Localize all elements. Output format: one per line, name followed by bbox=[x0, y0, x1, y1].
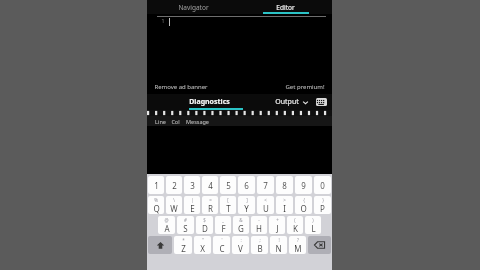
staticText: G bbox=[238, 223, 244, 234]
staticText: B bbox=[257, 243, 263, 254]
staticText: : bbox=[240, 237, 242, 243]
staticText: V bbox=[238, 243, 243, 254]
button[interactable]: _ bbox=[215, 216, 231, 234]
button[interactable]: Navigator bbox=[147, 0, 239, 14]
staticText: 9 bbox=[301, 180, 306, 191]
staticText: _ bbox=[222, 217, 224, 223]
staticText: = bbox=[209, 197, 212, 203]
button[interactable]: 5 bbox=[220, 176, 236, 194]
button[interactable]: * bbox=[174, 236, 192, 254]
button[interactable]: ' bbox=[213, 236, 230, 254]
button[interactable]: 0 bbox=[314, 176, 331, 194]
button[interactable]: Editor bbox=[239, 0, 332, 14]
staticText: 1 bbox=[154, 180, 159, 191]
staticText: S bbox=[183, 223, 188, 234]
button[interactable]: ! bbox=[270, 236, 287, 254]
button[interactable]: = bbox=[202, 196, 218, 214]
staticText: Remove ad banner bbox=[154, 83, 208, 91]
staticText: % bbox=[154, 197, 158, 203]
staticText: Message bbox=[186, 118, 209, 125]
button[interactable]: Keyboard bbox=[316, 98, 327, 106]
button[interactable]: Get premium! bbox=[284, 82, 326, 92]
staticText: * bbox=[182, 237, 185, 243]
button[interactable]: @ bbox=[158, 216, 175, 234]
button[interactable]: | bbox=[184, 196, 200, 214]
staticText: 3 bbox=[190, 180, 195, 191]
button[interactable]: < bbox=[257, 196, 274, 214]
staticText: O bbox=[300, 203, 307, 214]
button[interactable]: 1 bbox=[148, 176, 164, 194]
button[interactable]: { bbox=[295, 196, 312, 214]
staticText: D bbox=[202, 223, 208, 234]
staticText: U bbox=[263, 203, 269, 214]
button[interactable]: } bbox=[314, 196, 331, 214]
button[interactable]: [ bbox=[220, 196, 236, 214]
button[interactable]: 9 bbox=[295, 176, 312, 194]
staticText: | bbox=[191, 197, 194, 203]
staticText: 5 bbox=[226, 180, 231, 191]
button[interactable]: ] bbox=[238, 196, 255, 214]
staticText: 6 bbox=[244, 180, 249, 191]
staticText: L bbox=[311, 223, 316, 234]
button[interactable]: Diagnostics bbox=[147, 94, 272, 110]
button[interactable]: ? bbox=[289, 236, 306, 254]
button[interactable]: 6 bbox=[238, 176, 255, 194]
staticText: W bbox=[170, 203, 178, 214]
staticText: Z bbox=[181, 243, 186, 254]
button[interactable]: Backspace bbox=[308, 236, 331, 254]
button[interactable]: % bbox=[148, 196, 164, 214]
button[interactable]: $ bbox=[196, 216, 213, 234]
staticText: Line bbox=[155, 118, 166, 125]
button[interactable]: + bbox=[269, 216, 285, 234]
staticText: Editor bbox=[276, 3, 295, 12]
button[interactable]: Shift bbox=[148, 236, 172, 254]
staticText: $ bbox=[203, 217, 206, 223]
button[interactable]: \ bbox=[166, 196, 182, 214]
staticText: 4 bbox=[208, 180, 213, 191]
staticText: Navigator bbox=[178, 3, 209, 12]
staticText: F bbox=[221, 223, 226, 234]
staticText: A bbox=[164, 223, 170, 234]
button[interactable]: Remove ad banner bbox=[153, 82, 209, 92]
button[interactable]: " bbox=[194, 236, 211, 254]
button[interactable]: & bbox=[233, 216, 249, 234]
button[interactable]: 7 bbox=[257, 176, 274, 194]
staticText: " bbox=[202, 237, 204, 243]
staticText: ! bbox=[278, 237, 280, 243]
button[interactable]: : bbox=[232, 236, 249, 254]
staticText: Get premium! bbox=[285, 83, 325, 91]
button[interactable]: ; bbox=[251, 236, 268, 254]
staticText: N bbox=[275, 243, 282, 254]
staticText: < bbox=[264, 197, 267, 203]
staticText: + bbox=[276, 217, 279, 223]
staticText: 2 bbox=[172, 180, 177, 191]
button[interactable]: 2 bbox=[166, 176, 182, 194]
staticText: ] bbox=[246, 197, 248, 203]
staticText: 7 bbox=[263, 180, 268, 191]
button[interactable]: 3 bbox=[184, 176, 200, 194]
button[interactable]: Output bbox=[272, 95, 312, 109]
staticText: > bbox=[283, 197, 286, 203]
button[interactable]: 4 bbox=[202, 176, 218, 194]
button[interactable]: > bbox=[276, 196, 293, 214]
staticText: Col bbox=[171, 118, 180, 125]
staticText: # bbox=[184, 217, 187, 223]
staticText: \ bbox=[173, 197, 175, 203]
staticText: - bbox=[258, 217, 260, 223]
button[interactable]: ( bbox=[287, 216, 303, 234]
button[interactable]: # bbox=[177, 216, 194, 234]
button[interactable]: - bbox=[251, 216, 267, 234]
staticText: Q bbox=[153, 203, 160, 214]
button[interactable]: 8 bbox=[276, 176, 293, 194]
staticText: Output bbox=[275, 97, 299, 107]
staticText: ; bbox=[259, 237, 261, 243]
staticText: ? bbox=[297, 237, 299, 243]
staticText: Y bbox=[244, 203, 249, 214]
button[interactable]: ) bbox=[305, 216, 321, 234]
staticText: ' bbox=[221, 237, 223, 243]
staticText: 8 bbox=[282, 180, 287, 191]
staticText: Diagnostics bbox=[189, 97, 230, 107]
staticText: 1 bbox=[161, 17, 165, 25]
staticText: C bbox=[219, 243, 225, 254]
staticText: J bbox=[276, 223, 279, 234]
